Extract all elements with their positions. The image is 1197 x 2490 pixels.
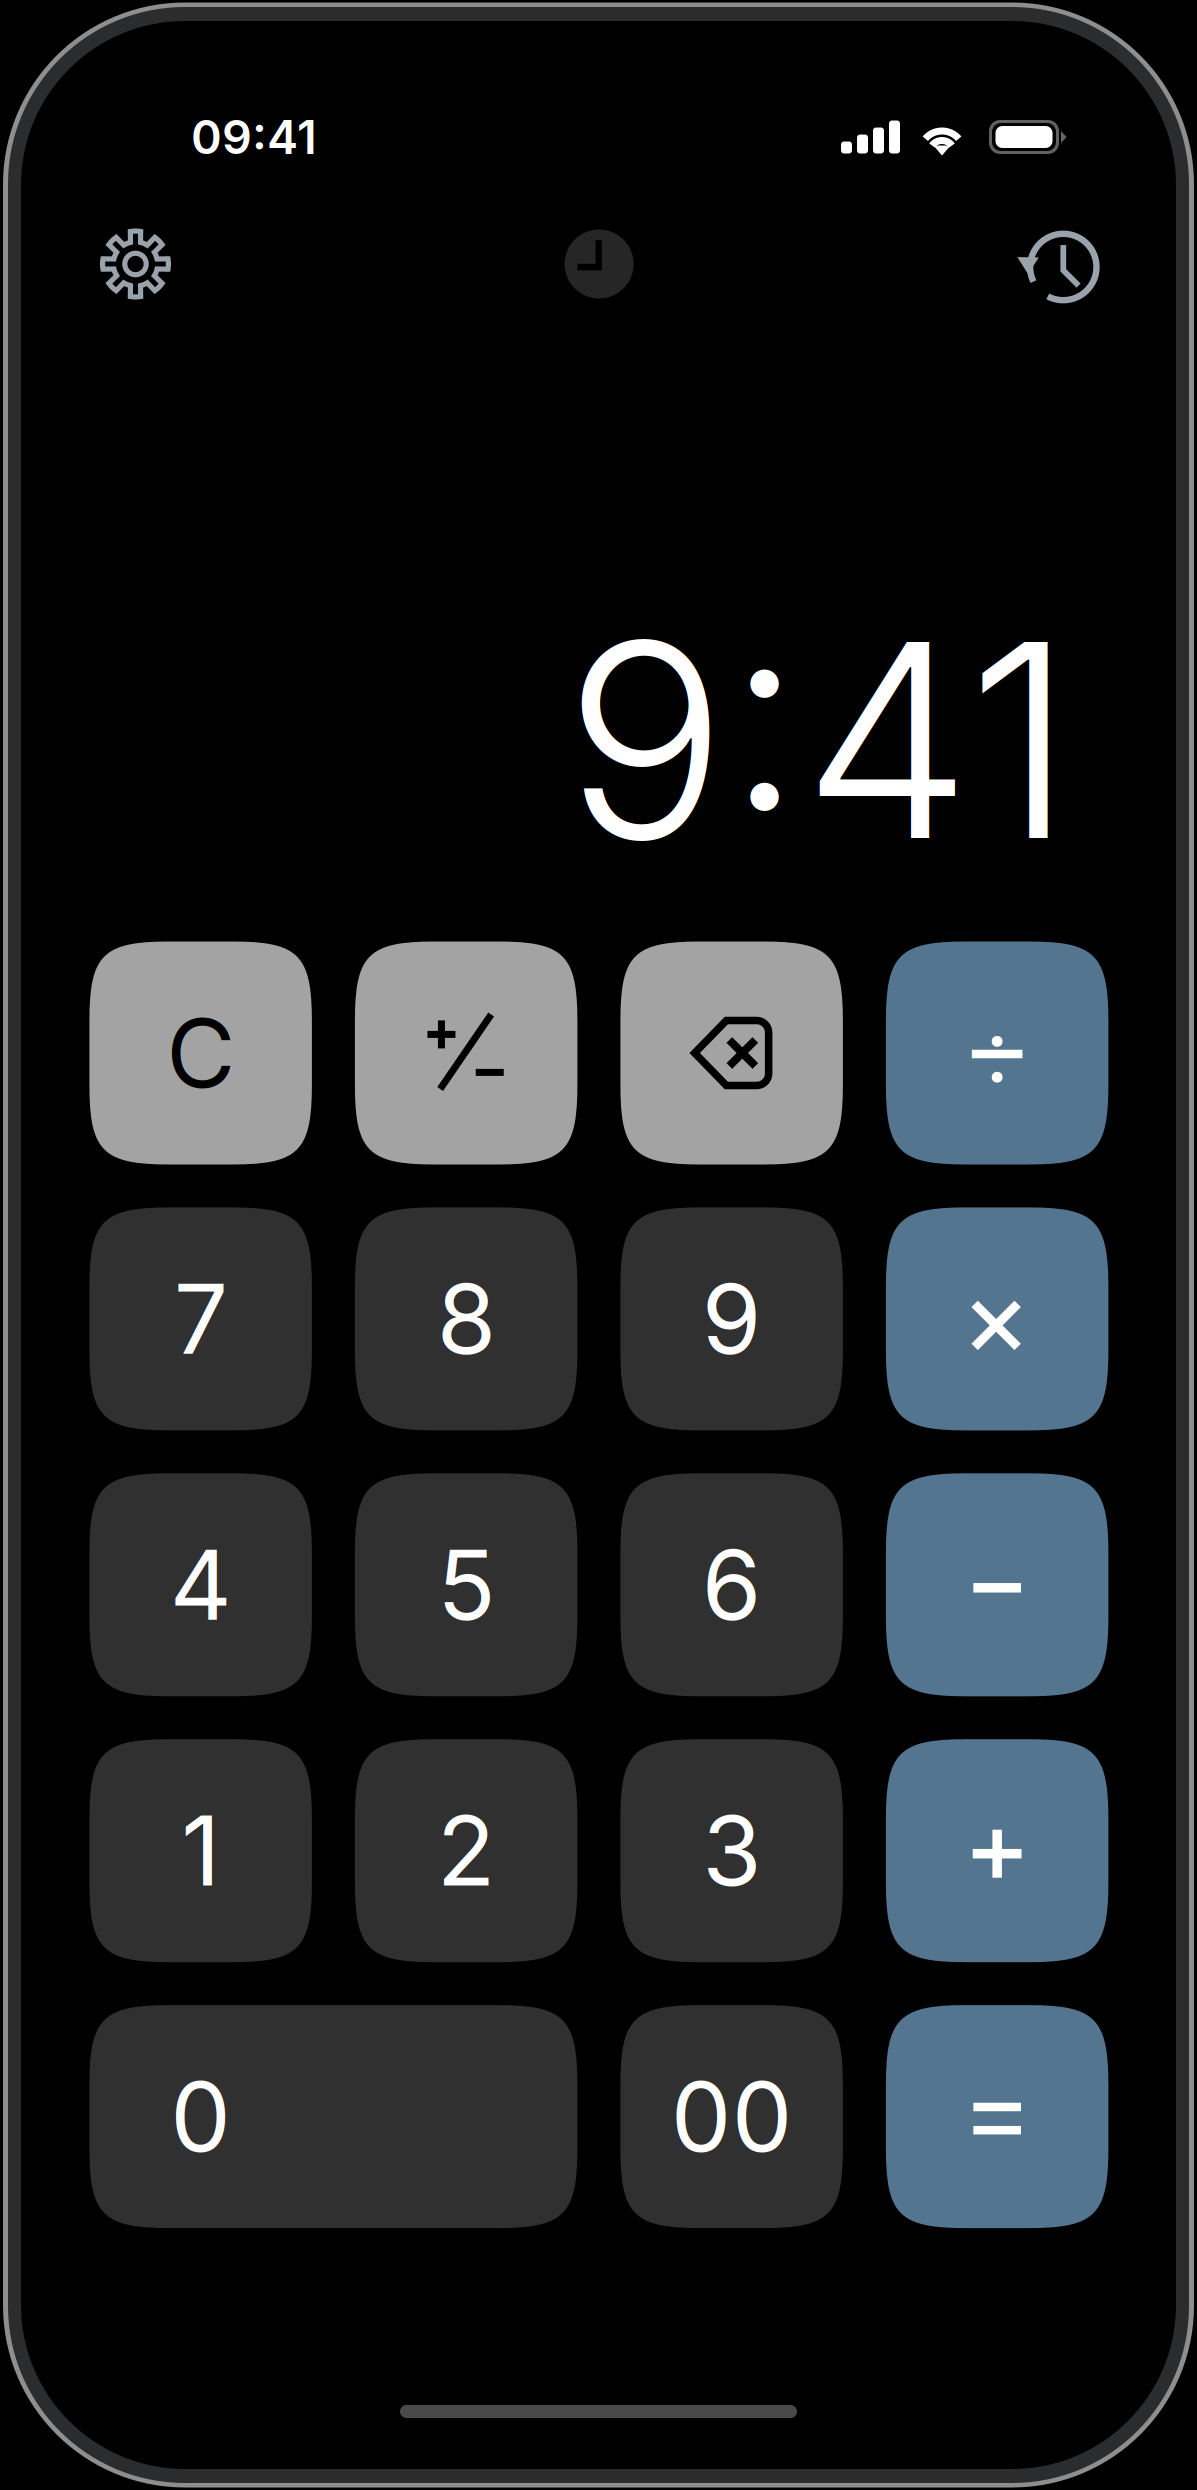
button[interactable]: Plus xyxy=(886,1739,1108,1962)
button[interactable]: 9 xyxy=(620,1207,843,1430)
staticText: 6 xyxy=(702,1527,762,1643)
staticText: 3 xyxy=(702,1793,761,1909)
button[interactable]: 7 xyxy=(89,1207,312,1430)
staticText: 8 xyxy=(437,1261,496,1377)
button[interactable]: 0 xyxy=(89,2005,577,2228)
button[interactable]: History xyxy=(1016,227,1096,307)
button[interactable]: Double zero xyxy=(620,2005,843,2228)
staticText: 7 xyxy=(174,1261,228,1377)
button[interactable]: 5 xyxy=(355,1473,577,1696)
button[interactable]: Divide xyxy=(886,941,1108,1164)
staticText: 09:41 xyxy=(191,109,317,165)
staticText: 1 xyxy=(181,1793,220,1909)
button[interactable]: 4 xyxy=(89,1473,312,1696)
button[interactable]: Equals xyxy=(886,2005,1108,2228)
button[interactable]: Clear xyxy=(89,941,312,1164)
button[interactable]: Plus minus xyxy=(355,941,577,1164)
button[interactable]: Delete xyxy=(620,941,843,1164)
button[interactable]: 1 xyxy=(89,1739,312,1962)
button[interactable]: Settings xyxy=(98,227,172,301)
button[interactable]: Multiply xyxy=(886,1207,1108,1430)
button[interactable]: 3 xyxy=(620,1739,843,1962)
staticText: 5 xyxy=(437,1527,495,1643)
button[interactable]: Minus xyxy=(886,1473,1108,1696)
button[interactable]: 2 xyxy=(355,1739,577,1962)
staticText: 9:41 xyxy=(565,577,1074,903)
staticText: 0 xyxy=(170,2058,231,2175)
staticText: C xyxy=(166,996,235,1110)
button[interactable]: 8 xyxy=(355,1207,577,1430)
staticText: 4 xyxy=(170,1527,232,1643)
button[interactable]: 6 xyxy=(620,1473,843,1696)
staticText: 2 xyxy=(437,1793,496,1909)
staticText: 00 xyxy=(671,2058,793,2175)
staticText: 9 xyxy=(702,1261,762,1377)
